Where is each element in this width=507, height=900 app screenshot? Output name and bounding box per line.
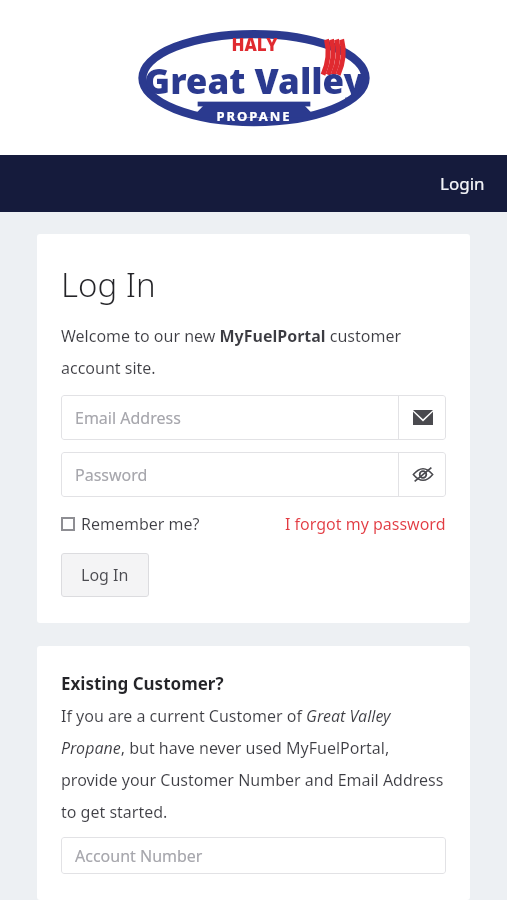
button[interactable]: Password xyxy=(61,452,446,497)
button[interactable]: I forgot my password xyxy=(285,513,446,535)
button[interactable]: Email Address xyxy=(61,395,446,440)
staticText: Email Address xyxy=(75,407,181,429)
button[interactable]: Remember me? xyxy=(61,513,200,535)
staticText: Log In xyxy=(61,262,156,307)
button[interactable]: Log In xyxy=(61,553,149,597)
staticText: If you are a current Customer of Great V… xyxy=(61,705,446,823)
staticText: Great Valley xyxy=(144,57,365,105)
staticText: Account Number xyxy=(75,845,203,867)
staticText: Existing Customer? xyxy=(61,672,224,695)
staticText: PROPANE xyxy=(216,107,292,125)
button[interactable]: Login xyxy=(418,158,507,209)
staticText: Remember me? xyxy=(81,513,200,535)
staticText: I forgot my password xyxy=(285,513,446,535)
staticText: Password xyxy=(75,464,148,486)
staticText: Login xyxy=(440,172,485,195)
staticText: HALY xyxy=(231,33,278,56)
staticText: Log In xyxy=(81,564,129,586)
button[interactable]: Show password xyxy=(399,453,446,496)
button[interactable]: Account Number xyxy=(61,837,446,874)
button[interactable]: Email xyxy=(399,396,446,439)
staticText: Welcome to our new MyFuelPortal customer… xyxy=(61,325,446,379)
